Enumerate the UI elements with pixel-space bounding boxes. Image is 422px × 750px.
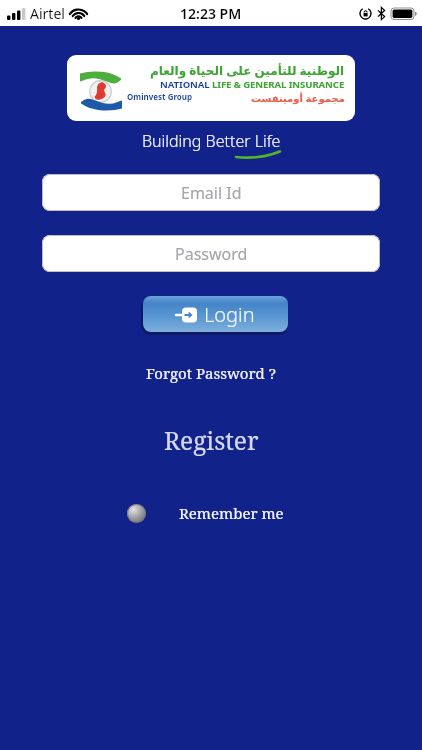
staticText: Login: [204, 301, 255, 328]
button[interactable]: Register: [164, 424, 259, 457]
staticText: Password: [175, 243, 248, 265]
button[interactable]: Password: [42, 235, 380, 272]
staticText: NATIONAL LIFE & GENERAL INSURANCE: [160, 78, 345, 91]
button[interactable]: الوطنية للتأمين على الحياة والعام: [67, 55, 355, 121]
button[interactable]: Remember me: [127, 503, 284, 523]
staticText: Airtel: [30, 4, 65, 23]
staticText: Building Better Life: [142, 130, 281, 152]
staticText: Remember me: [179, 503, 284, 523]
button[interactable]: Login: [143, 296, 288, 332]
staticText: 12:23 PM: [180, 4, 242, 23]
button[interactable]: Email Id: [42, 174, 380, 211]
button[interactable]: Forgot Password ?: [146, 363, 276, 383]
staticText: مجموعة أومينفست: [251, 91, 345, 105]
staticText: Email Id: [181, 182, 242, 204]
staticText: الوطنية للتأمين على الحياة والعام: [150, 62, 345, 78]
staticText: Ominvest Group: [127, 91, 193, 102]
